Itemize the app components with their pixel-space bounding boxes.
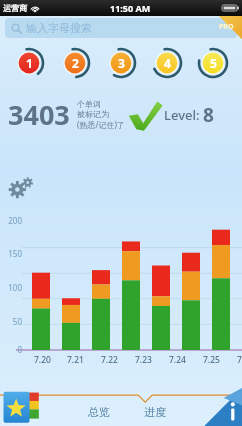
button[interactable]: Level 4 <box>152 48 182 78</box>
staticText: 个单词 <box>77 99 101 109</box>
staticText: 150 <box>2 248 22 259</box>
staticText: 7.22 <box>101 354 118 366</box>
staticText: 总览 <box>88 405 110 419</box>
staticText: 进度 <box>144 405 166 419</box>
staticText: 7.26 <box>237 354 242 366</box>
button[interactable]: Level 1 <box>14 48 44 78</box>
staticText: 2 <box>72 55 79 71</box>
staticText: 运营商 <box>3 3 27 13</box>
button[interactable]: 进度 <box>144 405 166 419</box>
staticText: 100 <box>2 282 22 293</box>
staticText: 输入字母搜索 <box>26 21 92 35</box>
staticText: 7.25 <box>203 354 220 366</box>
staticText: PRO <box>219 22 234 32</box>
staticText: 0 <box>2 344 22 355</box>
staticText: 200 <box>2 215 22 226</box>
button[interactable]: 输入字母搜索 <box>5 18 237 38</box>
staticText: 1 <box>26 55 33 71</box>
staticText: 7.20 <box>34 354 51 366</box>
staticText: 11:50 AM <box>110 2 151 14</box>
staticText: 50 <box>2 316 22 327</box>
button[interactable]: Info <box>212 397 242 426</box>
staticText: 5 <box>210 55 217 71</box>
staticText: (熟悉/记住)了 <box>77 119 125 130</box>
staticText: 4 <box>164 55 171 71</box>
button[interactable]: Level 3 <box>106 48 136 78</box>
button[interactable]: Level 5 <box>198 48 228 78</box>
button[interactable]: Settings <box>8 174 34 200</box>
staticText: 3403 <box>8 96 70 133</box>
staticText: 7.24 <box>169 354 186 366</box>
button[interactable]: 总览 <box>88 405 110 419</box>
button[interactable]: Wordbook <box>1 385 43 426</box>
staticText: 8 <box>203 102 214 128</box>
staticText: 3 <box>118 55 125 71</box>
staticText: 7.23 <box>135 354 152 366</box>
staticText: 被标记为 <box>77 109 109 119</box>
button[interactable]: Level 2 <box>60 48 90 78</box>
staticText: Level: <box>164 106 203 124</box>
staticText: 7.21 <box>67 354 84 366</box>
